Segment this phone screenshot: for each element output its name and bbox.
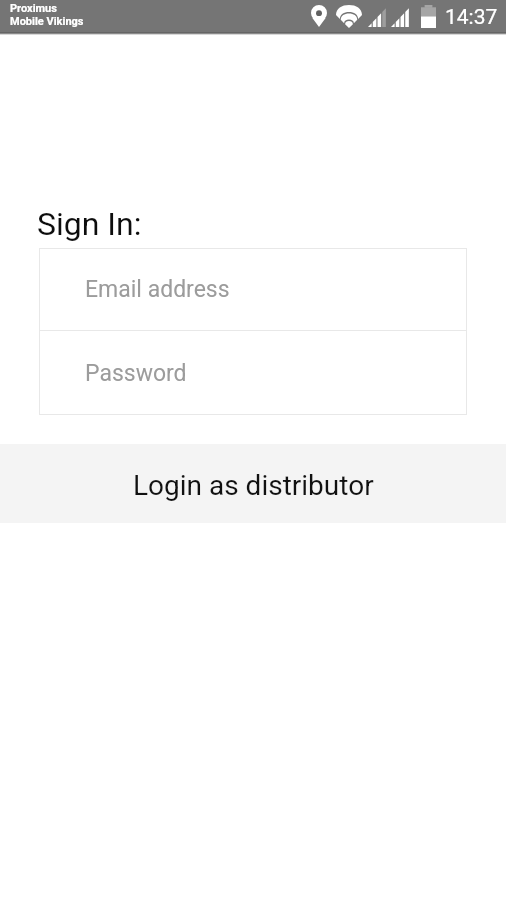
staticText: Login as distributor	[133, 469, 374, 502]
staticText: Proximus	[10, 2, 57, 15]
staticText: Password	[85, 360, 187, 387]
button[interactable]: Login as distributor	[0, 444, 506, 523]
staticText: Email address	[85, 276, 230, 303]
other: Battery	[421, 5, 436, 28]
button[interactable]: Password	[39, 331, 467, 415]
staticText: 14:37	[445, 5, 498, 30]
staticText: Mobile Vikings	[10, 15, 84, 28]
staticText: Sign In:	[37, 205, 142, 243]
other: Wi-Fi signal	[336, 5, 362, 28]
other: Mobile signal SIM 1	[368, 7, 387, 28]
other: Location	[311, 5, 327, 27]
button[interactable]: Email address	[39, 248, 467, 330]
other: Mobile signal SIM 2	[391, 7, 410, 28]
